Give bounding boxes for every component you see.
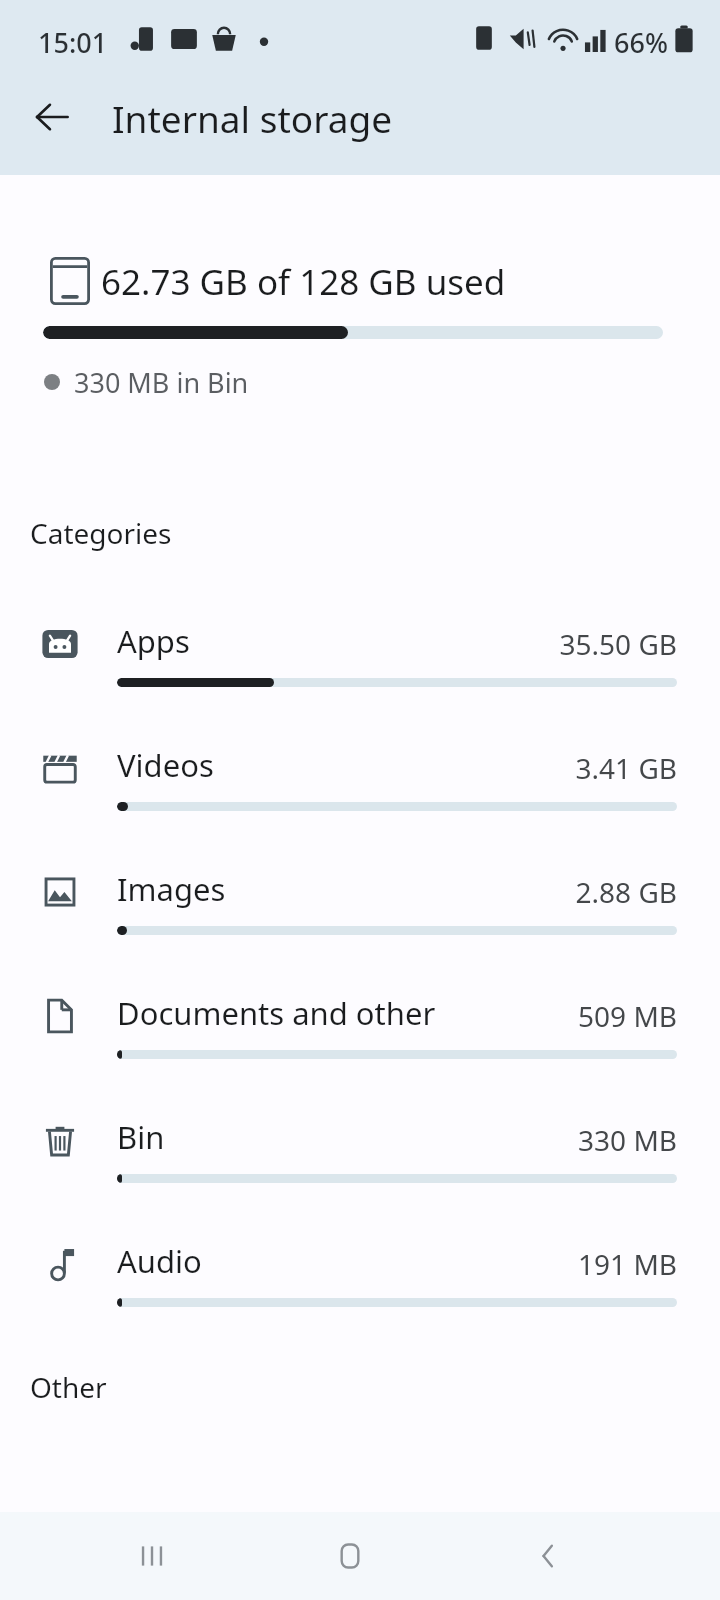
- staticText: 15:01: [38, 24, 108, 61]
- button[interactable]: Recents: [108, 1512, 196, 1600]
- staticText: Apps: [117, 620, 190, 662]
- staticText: 66%: [614, 24, 668, 61]
- staticText: 2.88 GB: [377, 873, 677, 911]
- button[interactable]: Documents and other: [0, 972, 720, 1096]
- staticText: Internal storage: [112, 93, 393, 143]
- staticText: Other: [30, 1368, 107, 1406]
- staticText: Categories: [30, 514, 172, 552]
- staticText: 3.41 GB: [377, 749, 677, 787]
- button[interactable]: Videos: [0, 724, 720, 848]
- button[interactable]: Bin: [0, 1096, 720, 1220]
- staticText: Audio: [117, 1240, 202, 1282]
- staticText: Images: [117, 868, 226, 910]
- staticText: 35.50 GB: [377, 625, 677, 663]
- button[interactable]: Back: [20, 85, 84, 149]
- staticText: 330 MB: [377, 1121, 677, 1159]
- button[interactable]: Images: [0, 848, 720, 972]
- staticText: 330 MB in Bin: [74, 364, 249, 401]
- staticText: 191 MB: [377, 1245, 677, 1283]
- staticText: Videos: [117, 744, 214, 786]
- staticText: 62.73 GB of 128 GB used: [101, 258, 506, 306]
- staticText: 509 MB: [377, 997, 677, 1035]
- staticText: Documents and other: [117, 992, 436, 1034]
- staticText: Bin: [117, 1116, 165, 1158]
- button[interactable]: Apps: [0, 600, 720, 724]
- button[interactable]: Home: [306, 1512, 394, 1600]
- button[interactable]: Back: [504, 1512, 592, 1600]
- button[interactable]: Audio: [0, 1220, 720, 1344]
